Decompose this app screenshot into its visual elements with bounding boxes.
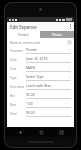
staticText: Photo <box>52 32 62 37</box>
staticText: Type <box>10 76 25 80</box>
button[interactable]: Date <box>10 55 71 64</box>
button[interactable]: Recent apps <box>56 127 66 137</box>
staticText: MAIN <box>26 65 68 70</box>
staticText: 9:00 <box>66 18 72 22</box>
button[interactable]: Rate <box>10 100 71 109</box>
staticText: 95.00 <box>26 92 71 97</box>
button[interactable]: Cost Center <box>10 64 71 73</box>
button[interactable]: Net <box>10 91 71 100</box>
staticText: Rate <box>10 103 25 107</box>
button[interactable]: Type <box>10 73 71 82</box>
staticText: Private <box>26 47 68 52</box>
button[interactable]: More options <box>66 22 74 31</box>
staticText: Cost Center <box>10 67 25 71</box>
button[interactable]: Details <box>7 31 40 38</box>
staticText: Lunch with Max <box>26 83 71 88</box>
staticText: 95.00 <box>26 110 71 115</box>
staticText: Select Type <box>26 74 68 79</box>
staticText: Total amount <box>10 112 25 116</box>
staticText: 1.00 <box>26 101 71 106</box>
staticText: Date <box>10 58 25 62</box>
staticText: Mark as reimbursed <box>10 41 41 45</box>
button[interactable]: Photo <box>40 31 74 38</box>
staticText: Edit Expense <box>10 24 37 30</box>
staticText: Details <box>18 32 29 37</box>
button[interactable]: Mark as reimbursed <box>10 40 71 45</box>
staticText: June 30, 2018 <box>26 56 71 61</box>
button[interactable]: Home <box>36 127 46 137</box>
staticText: Description <box>10 85 25 89</box>
staticText: Net <box>10 94 25 98</box>
button[interactable]: Description <box>10 82 71 91</box>
button[interactable]: Back <box>15 127 25 137</box>
button[interactable]: Total amount <box>10 109 71 118</box>
staticText: Payment <box>10 49 25 53</box>
button[interactable]: Payment <box>10 46 71 55</box>
